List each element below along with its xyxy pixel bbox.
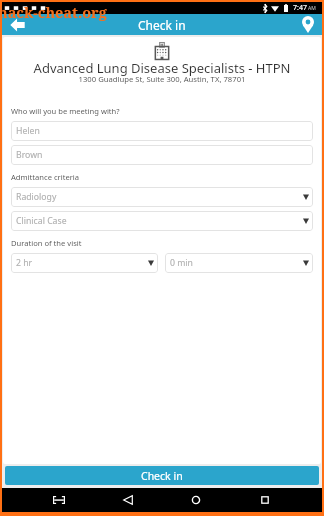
button[interactable]: Radiology bbox=[11, 187, 313, 207]
staticText: Clinical Case bbox=[16, 215, 67, 227]
staticText: AM bbox=[308, 5, 316, 12]
staticText: Radiology bbox=[16, 191, 57, 203]
button[interactable]: 0 min bbox=[165, 253, 313, 273]
button[interactable]: Clinical Case bbox=[11, 211, 313, 231]
staticText: Who will you be meeting with? bbox=[11, 106, 120, 116]
staticText: Check in bbox=[141, 469, 183, 483]
button[interactable]: Location bbox=[294, 14, 322, 35]
staticText: 1300 Guadlupe St, Suite 300, Austin, TX,… bbox=[11, 74, 313, 84]
staticText: Brown bbox=[16, 149, 43, 161]
button[interactable]: Home bbox=[184, 488, 208, 512]
staticText: hack-cheat.org bbox=[0, 2, 107, 22]
button[interactable]: Back bbox=[2, 14, 32, 35]
staticText: 7:47 bbox=[293, 3, 307, 13]
button[interactable]: Back bbox=[116, 488, 140, 512]
staticText: Check in bbox=[138, 17, 186, 33]
button[interactable]: Resize bbox=[47, 488, 71, 512]
staticText: Duration of the visit bbox=[11, 238, 82, 248]
button[interactable]: 2 hr bbox=[11, 253, 158, 273]
button[interactable]: Check in bbox=[5, 466, 319, 485]
button[interactable]: Brown bbox=[11, 145, 313, 165]
staticText: 2 hr bbox=[16, 257, 33, 269]
staticText: Advanced Lung Disease Specialists - HTPN bbox=[11, 59, 313, 77]
button[interactable]: Helen bbox=[11, 121, 313, 141]
staticText: Helen bbox=[16, 125, 40, 137]
staticText: Admittance criteria bbox=[11, 172, 80, 182]
button[interactable]: Recents bbox=[253, 488, 277, 512]
staticText: 0 min bbox=[170, 257, 193, 269]
